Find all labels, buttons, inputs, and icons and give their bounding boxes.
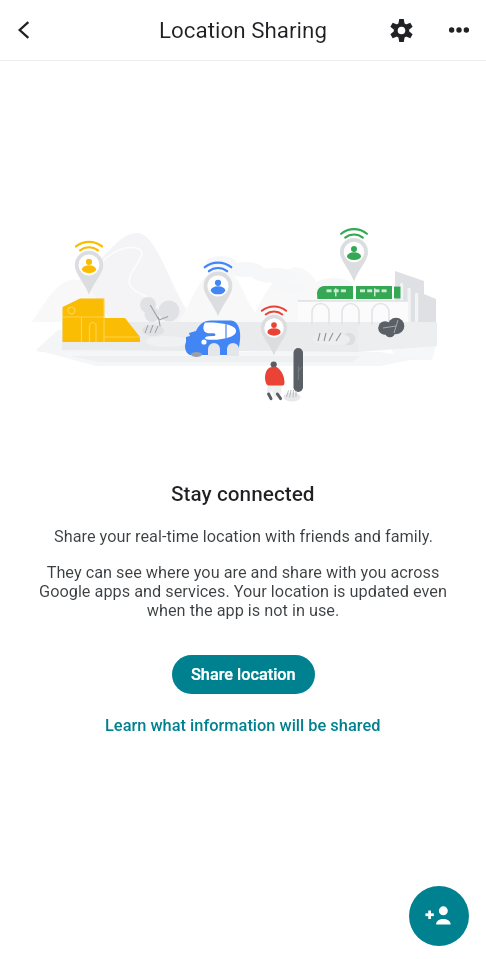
button[interactable]: More options <box>435 6 483 54</box>
button[interactable]: Add person <box>409 886 469 946</box>
button[interactable]: Share location <box>172 655 315 694</box>
staticText: Share location <box>191 665 296 684</box>
staticText: They can see where you are and share wit… <box>38 563 448 620</box>
staticText: Location Sharing <box>159 17 327 43</box>
staticText: Learn what information will be shared <box>105 716 381 735</box>
button[interactable]: Back <box>0 6 48 54</box>
button[interactable]: Settings <box>377 6 425 54</box>
staticText: Stay connected <box>171 482 315 506</box>
button[interactable]: Learn what information will be shared <box>97 713 389 738</box>
staticText: Share your real-time location with frien… <box>54 527 433 546</box>
